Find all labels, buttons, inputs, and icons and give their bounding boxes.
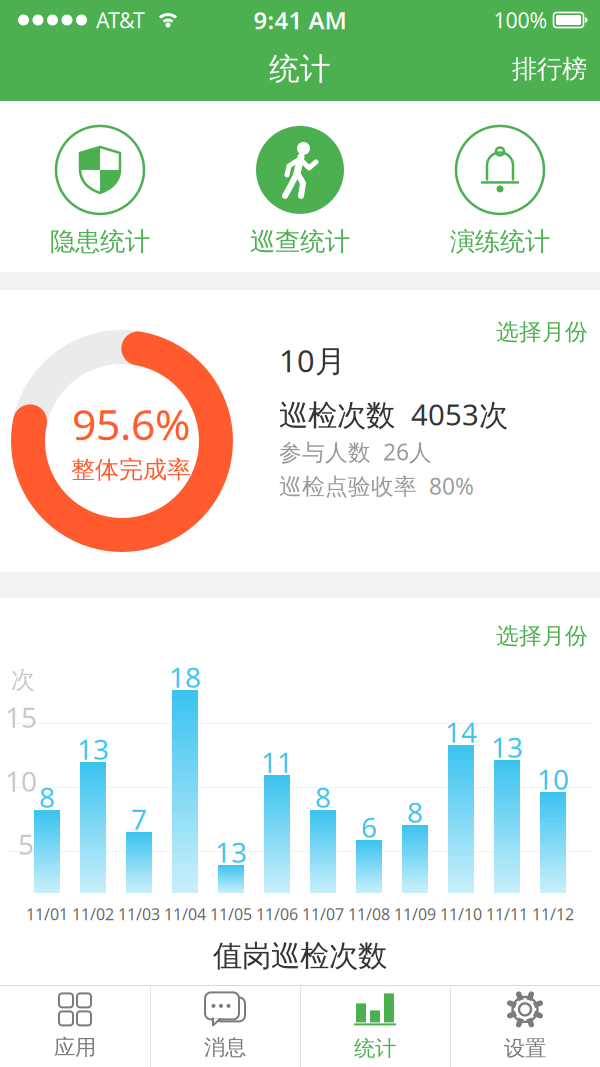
staticText: 参与人数 26人	[279, 437, 432, 467]
staticText: 11	[261, 743, 293, 781]
staticText: 11/07	[302, 903, 344, 925]
staticText: 巡检次数 4053次	[279, 395, 508, 434]
button[interactable]: 选择月份	[496, 622, 588, 650]
staticText: 11/03	[118, 903, 160, 925]
button[interactable]: 统计	[300, 986, 450, 1067]
staticText: 选择月份	[496, 622, 588, 650]
staticText: 统计	[354, 1035, 396, 1062]
staticText: 巡检点验收率 80%	[279, 471, 474, 501]
staticText: 应用	[54, 1034, 96, 1061]
staticText: 整体完成率	[71, 455, 191, 485]
staticText: 13	[215, 833, 247, 871]
staticText: 13	[77, 730, 109, 768]
staticText: 13	[491, 728, 523, 766]
button[interactable]: 消息	[150, 986, 300, 1067]
staticText: AT&T	[96, 6, 145, 34]
staticText: 11/11	[486, 903, 528, 925]
button[interactable]: 隐患统计	[0, 101, 200, 272]
staticText: 8	[407, 793, 423, 831]
button[interactable]: 应用	[0, 986, 150, 1067]
staticText: 15	[5, 698, 37, 736]
staticText: 8	[39, 778, 55, 816]
staticText: 11/04	[164, 903, 206, 925]
staticText: 次	[11, 665, 35, 695]
staticText: 8	[315, 778, 331, 816]
staticText: 100%	[493, 6, 547, 34]
staticText: 11/09	[394, 903, 436, 925]
button[interactable]: 设置	[450, 986, 600, 1067]
staticText: 11/02	[72, 903, 114, 925]
staticText: 14	[445, 713, 477, 751]
staticText: 消息	[204, 1034, 246, 1061]
staticText: 隐患统计	[50, 226, 150, 257]
staticText: 6	[361, 808, 377, 846]
staticText: 95.6%	[72, 395, 190, 452]
staticText: 10	[5, 762, 37, 800]
button[interactable]: 排行榜	[512, 53, 587, 84]
staticText: 巡查统计	[250, 226, 350, 257]
button[interactable]: 选择月份	[496, 318, 588, 346]
staticText: 排行榜	[512, 53, 587, 84]
staticText: 10月	[279, 340, 346, 381]
button[interactable]: 演练统计	[400, 101, 600, 272]
staticText: 11/01	[26, 903, 68, 925]
staticText: 9:41 AM	[253, 4, 346, 36]
staticText: 选择月份	[496, 318, 588, 346]
staticText: 设置	[504, 1035, 546, 1062]
staticText: 统计	[269, 50, 331, 88]
staticText: 11/12	[532, 903, 574, 925]
staticText: 7	[131, 800, 147, 838]
staticText: 5	[18, 825, 34, 863]
staticText: 值岗巡检次数	[213, 938, 387, 974]
staticText: 11/10	[440, 903, 482, 925]
staticText: 18	[169, 658, 201, 696]
staticText: 演练统计	[450, 226, 550, 257]
staticText: 11/08	[348, 903, 390, 925]
button[interactable]: 巡查统计	[200, 101, 400, 272]
staticText: 11/05	[210, 903, 252, 925]
staticText: 10	[537, 760, 569, 798]
staticText: 11/06	[256, 903, 298, 925]
